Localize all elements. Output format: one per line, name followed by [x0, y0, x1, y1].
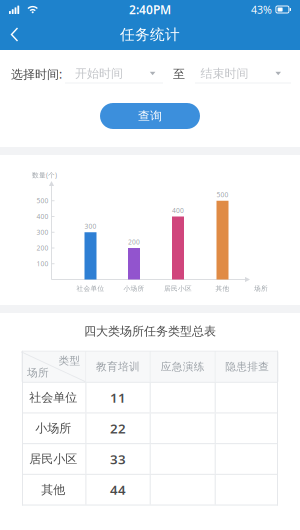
- staticText: 数量(个): [32, 171, 57, 179]
- staticText: 教育培训: [96, 360, 140, 373]
- staticText: 居民小区: [164, 284, 192, 293]
- staticText: 其他: [41, 482, 65, 497]
- staticText: 其他: [215, 284, 229, 293]
- staticText: 200: [36, 244, 48, 252]
- staticText: 开始时间: [75, 66, 123, 81]
- staticText: 场所: [27, 366, 49, 379]
- staticText: 社会单位: [29, 390, 77, 405]
- button[interactable]: Back: [0, 19, 28, 50]
- staticText: 2:40PM: [129, 1, 171, 17]
- staticText: 22: [110, 419, 126, 437]
- staticText: 类型: [58, 354, 80, 367]
- staticText: 300: [36, 228, 48, 237]
- staticText: 查询: [138, 109, 162, 123]
- button[interactable]: 结束时间: [195, 64, 291, 83]
- staticText: 100: [36, 259, 48, 268]
- staticText: 应急演练: [161, 360, 205, 373]
- staticText: 400: [36, 212, 48, 221]
- staticText: 43%: [251, 2, 272, 17]
- staticText: 11: [110, 389, 126, 406]
- staticText: 500: [36, 196, 48, 205]
- staticText: 隐患排查: [225, 360, 269, 373]
- staticText: 四大类场所任务类型总表: [84, 324, 216, 339]
- staticText: 500: [216, 190, 228, 199]
- staticText: 200: [128, 238, 140, 246]
- staticText: 选择时间:: [11, 66, 62, 82]
- staticText: 300: [84, 222, 96, 231]
- staticText: 结束时间: [200, 66, 248, 81]
- button[interactable]: 查询: [100, 103, 200, 129]
- staticText: 任务统计: [120, 25, 180, 43]
- staticText: 400: [172, 206, 184, 215]
- staticText: 44: [110, 481, 126, 498]
- staticText: 小场所: [123, 284, 144, 293]
- staticText: 小场所: [35, 421, 71, 436]
- staticText: 至: [173, 67, 185, 81]
- staticText: 社会单位: [76, 284, 104, 293]
- staticText: 居民小区: [29, 452, 77, 466]
- staticText: 场所: [254, 284, 268, 293]
- staticText: 33: [110, 450, 126, 468]
- button[interactable]: 开始时间: [65, 64, 163, 83]
